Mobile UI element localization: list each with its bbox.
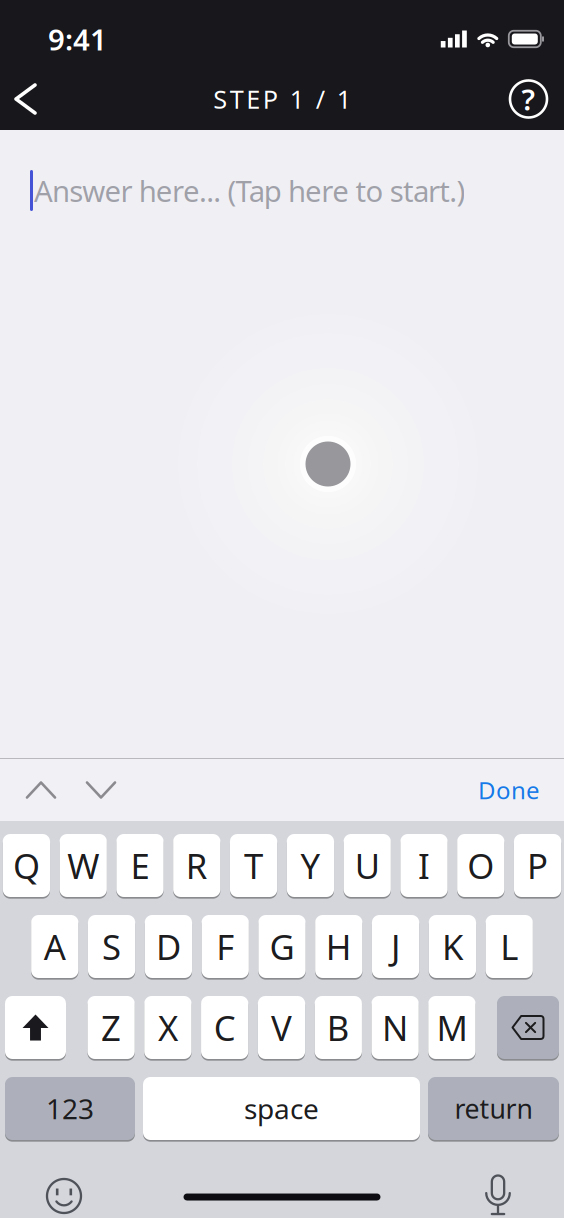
button[interactable]: F — [201, 915, 249, 978]
staticText: J — [391, 923, 400, 969]
staticText: N — [382, 1004, 408, 1050]
staticText: 123 — [46, 1090, 94, 1127]
staticText: P — [527, 842, 548, 888]
button[interactable]: space — [143, 1077, 420, 1140]
button[interactable]: T — [230, 834, 277, 897]
staticText: space — [244, 1090, 319, 1127]
staticText: ? — [521, 79, 535, 118]
staticText: Q — [13, 842, 40, 888]
button[interactable]: G — [258, 915, 306, 978]
button[interactable]: Dictate — [484, 1175, 564, 1216]
staticText: O — [467, 842, 494, 888]
button[interactable]: Shift — [5, 996, 66, 1059]
button[interactable]: Q — [3, 834, 50, 897]
button[interactable]: C — [201, 996, 248, 1059]
staticText: Answer here... (Tap here to start.) — [34, 171, 465, 210]
button[interactable]: Delete — [497, 996, 559, 1059]
button[interactable]: M — [428, 996, 475, 1059]
staticText: Y — [300, 842, 320, 888]
button[interactable]: K — [429, 915, 476, 978]
staticText: Done — [478, 774, 540, 806]
button[interactable]: X — [144, 996, 191, 1059]
staticText: Z — [101, 1004, 121, 1050]
button[interactable]: Done — [478, 774, 540, 806]
staticText: B — [327, 1004, 350, 1050]
staticText: M — [436, 1004, 467, 1050]
button[interactable]: Back — [0, 69, 35, 129]
button[interactable]: R — [173, 834, 220, 897]
button[interactable]: E — [116, 834, 164, 897]
button[interactable]: Help — [510, 79, 564, 118]
staticText: H — [326, 923, 352, 969]
staticText: K — [442, 923, 463, 969]
button[interactable]: P — [514, 834, 561, 897]
button[interactable]: D — [145, 915, 192, 978]
button[interactable]: V — [258, 996, 305, 1059]
staticText: T — [244, 842, 263, 888]
button[interactable]: N — [371, 996, 419, 1059]
staticText: D — [156, 923, 181, 969]
button[interactable]: W — [59, 834, 107, 897]
button[interactable]: H — [315, 915, 362, 978]
button[interactable]: U — [344, 834, 391, 897]
button[interactable]: J — [372, 915, 419, 978]
staticText: U — [355, 842, 380, 888]
staticText: E — [130, 842, 149, 888]
staticText: R — [186, 842, 208, 888]
button[interactable]: O — [457, 834, 504, 897]
button[interactable]: S — [88, 915, 135, 978]
button[interactable]: Y — [287, 834, 334, 897]
button[interactable]: return — [428, 1077, 559, 1140]
staticText: L — [500, 923, 518, 969]
button[interactable]: I — [400, 834, 448, 897]
staticText: A — [44, 923, 66, 969]
staticText: I — [418, 842, 430, 888]
staticText: F — [216, 923, 234, 969]
staticText: return — [454, 1091, 532, 1126]
button[interactable]: L — [486, 915, 533, 978]
button[interactable]: A — [31, 915, 78, 978]
staticText: STEP 1 / 1 — [213, 82, 351, 116]
staticText: 9:41 — [48, 19, 107, 58]
button[interactable]: Emoji — [0, 1179, 81, 1213]
staticText: S — [102, 923, 121, 969]
staticText: X — [158, 1004, 178, 1050]
staticText: G — [269, 923, 294, 969]
button[interactable]: Z — [87, 996, 135, 1059]
staticText: V — [271, 1004, 292, 1050]
button[interactable]: 123 — [5, 1077, 135, 1140]
button[interactable]: B — [315, 996, 362, 1059]
staticText: C — [214, 1004, 236, 1050]
staticText: W — [67, 842, 99, 888]
button[interactable]: Previous field — [27, 782, 55, 797]
button[interactable]: Next field — [87, 782, 115, 797]
